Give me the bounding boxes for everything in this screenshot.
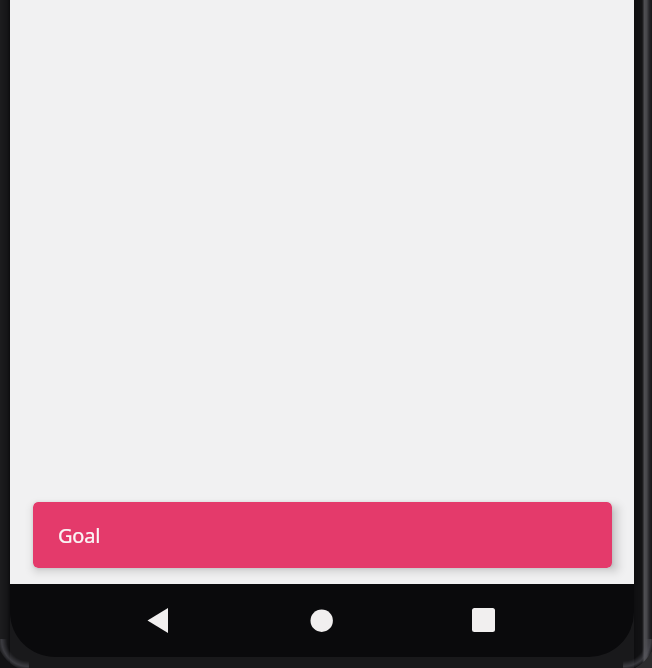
staticText: Goal: [58, 522, 101, 549]
button[interactable]: [460, 596, 508, 644]
button[interactable]: Goal: [33, 502, 612, 568]
button[interactable]: [298, 597, 346, 645]
button[interactable]: [134, 596, 182, 644]
